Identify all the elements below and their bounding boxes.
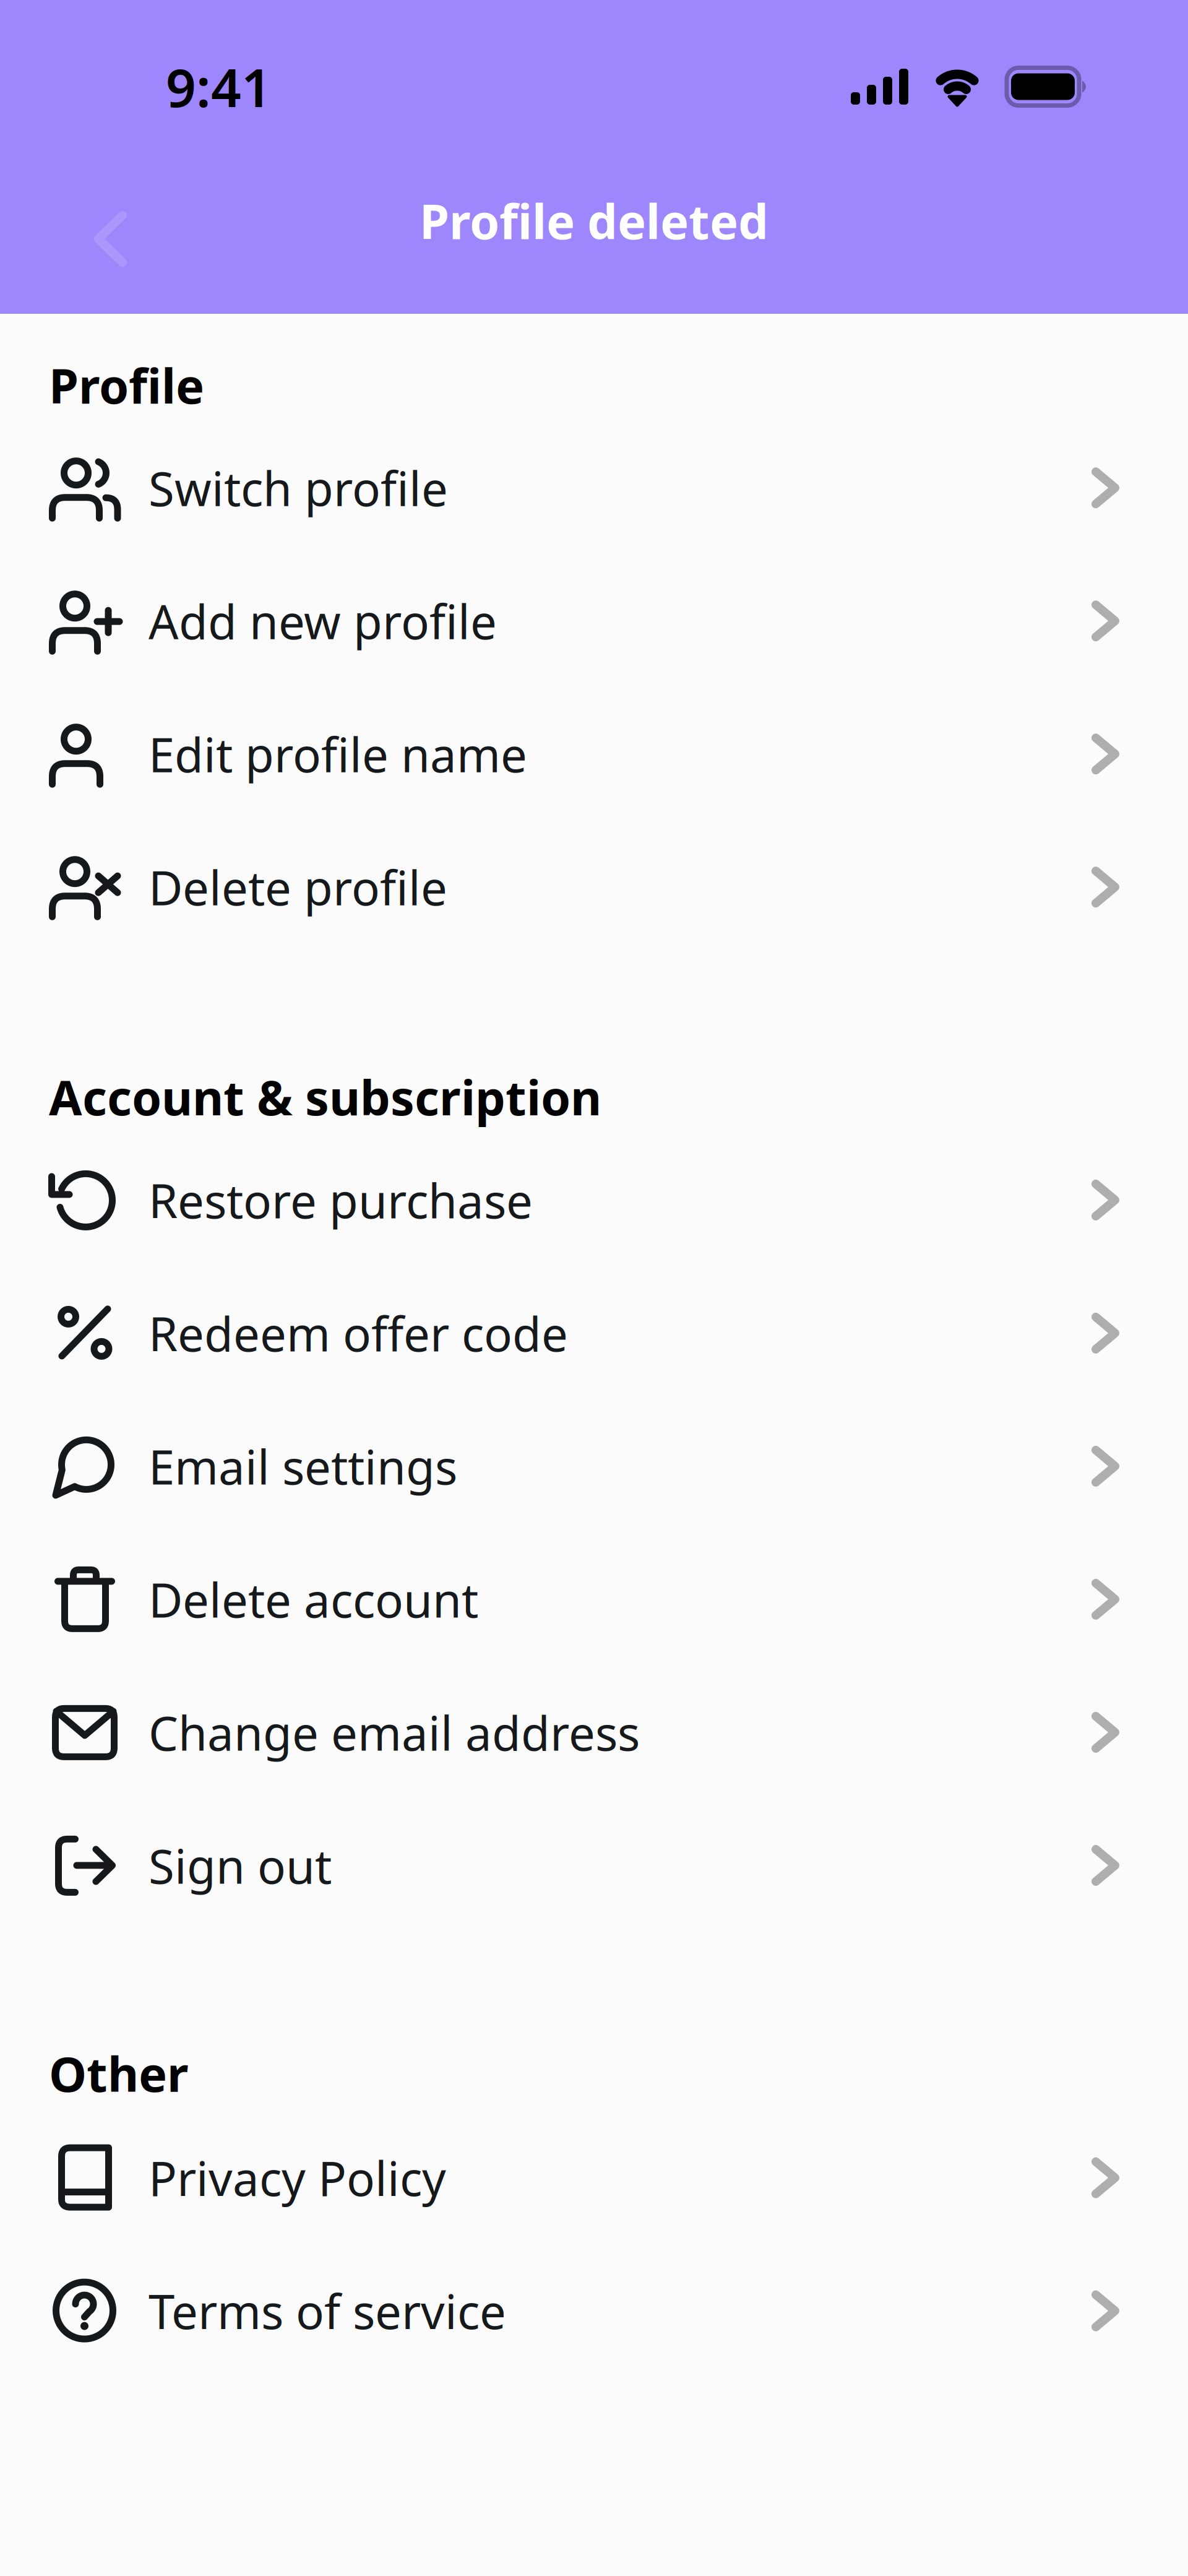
- button[interactable]: Edit profile name: [0, 687, 1188, 821]
- staticText: Sign out: [148, 1834, 332, 1897]
- staticText: Terms of service: [148, 2280, 506, 2342]
- staticText: 9:41: [166, 52, 272, 122]
- button[interactable]: Delete account: [0, 1533, 1188, 1666]
- staticText: Account & subscription: [49, 1065, 601, 1129]
- button[interactable]: Terms of service: [0, 2244, 1188, 2377]
- staticText: Switch profile: [148, 457, 448, 519]
- button[interactable]: Restore purchase: [0, 1134, 1188, 1267]
- staticText: Privacy Policy: [148, 2147, 446, 2209]
- staticText: Other: [49, 2041, 189, 2105]
- staticText: Add new profile: [148, 590, 497, 652]
- staticText: Profile: [49, 353, 204, 417]
- staticText: Profile deleted: [420, 189, 768, 252]
- button[interactable]: Privacy Policy: [0, 2111, 1188, 2244]
- button[interactable]: Switch profile: [0, 421, 1188, 554]
- staticText: Restore purchase: [148, 1169, 533, 1231]
- staticText: Delete account: [148, 1568, 478, 1630]
- staticText: Email settings: [148, 1435, 457, 1497]
- button[interactable]: Change email address: [0, 1666, 1188, 1799]
- button[interactable]: Sign out: [0, 1799, 1188, 1932]
- staticText: Delete profile: [148, 856, 447, 918]
- button[interactable]: Redeem offer code: [0, 1267, 1188, 1400]
- button[interactable]: Email settings: [0, 1400, 1188, 1533]
- staticText: Change email address: [148, 1701, 640, 1764]
- staticText: Edit profile name: [148, 723, 527, 785]
- button[interactable]: Back: [0, 181, 164, 296]
- button[interactable]: Add new profile: [0, 554, 1188, 687]
- button[interactable]: Delete profile: [0, 821, 1188, 954]
- staticText: Redeem offer code: [148, 1302, 568, 1364]
